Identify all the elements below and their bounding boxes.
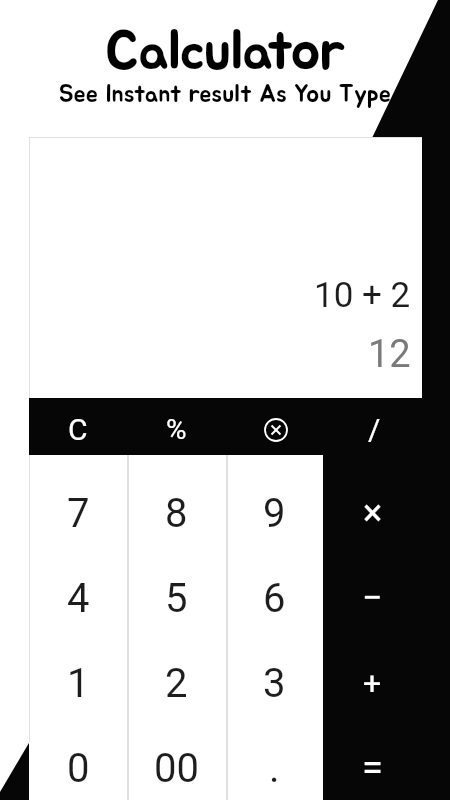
button[interactable]: 1 xyxy=(29,641,127,726)
staticText: 4 xyxy=(67,575,90,622)
button[interactable]: + xyxy=(323,640,422,725)
staticText: 8 xyxy=(165,490,188,537)
staticText: 2 xyxy=(165,660,188,707)
button[interactable]: 0 xyxy=(29,726,127,800)
button[interactable]: 3 xyxy=(225,641,323,726)
staticText: % xyxy=(166,413,187,446)
button[interactable]: 4 xyxy=(29,556,127,641)
staticText: × xyxy=(363,492,383,534)
staticText: 6 xyxy=(263,575,286,622)
staticText: = xyxy=(362,746,383,791)
button[interactable]: × xyxy=(323,470,422,555)
staticText: 9 xyxy=(263,490,286,537)
staticText: C xyxy=(68,412,88,447)
button[interactable]: % xyxy=(127,401,226,458)
button[interactable]: = xyxy=(323,726,422,800)
staticText: 00 xyxy=(154,745,199,792)
button[interactable]: 5 xyxy=(127,556,225,641)
staticText: / xyxy=(368,412,381,447)
button[interactable]: 8 xyxy=(127,471,225,556)
button[interactable]: / xyxy=(325,401,423,458)
staticText: 7 xyxy=(67,490,90,537)
staticText: Calculator xyxy=(105,25,346,80)
staticText: 5 xyxy=(165,575,188,622)
button[interactable]: − xyxy=(323,555,422,640)
staticText: 12 xyxy=(368,332,411,377)
staticText: 0 xyxy=(67,745,90,792)
button[interactable]: 6 xyxy=(225,556,323,641)
staticText: 1 xyxy=(67,660,90,707)
button[interactable] xyxy=(226,401,325,458)
button[interactable]: 2 xyxy=(127,641,225,726)
button[interactable]: 00 xyxy=(127,726,225,800)
button[interactable]: 7 xyxy=(29,471,127,556)
button[interactable]: 9 xyxy=(225,471,323,556)
staticText: + xyxy=(363,664,382,702)
staticText: 10 + 2 xyxy=(314,275,411,316)
staticText: See Instant result As You Type xyxy=(59,83,392,107)
button[interactable]: C xyxy=(29,401,127,458)
staticText: . xyxy=(269,745,280,792)
staticText: 3 xyxy=(263,660,286,707)
staticText: − xyxy=(362,577,383,619)
button[interactable]: . xyxy=(225,726,323,800)
